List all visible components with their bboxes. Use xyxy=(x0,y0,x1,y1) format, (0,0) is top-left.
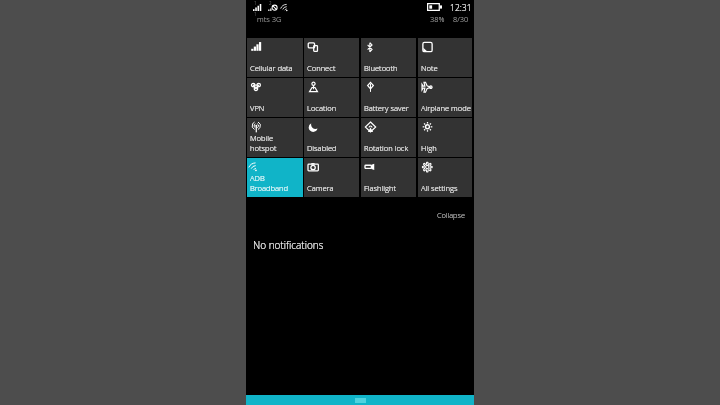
staticText: Disabled xyxy=(307,143,337,153)
staticText: Rotation lock xyxy=(364,143,409,153)
staticText: VPN xyxy=(250,103,265,113)
button[interactable]: Camera xyxy=(304,158,359,197)
button[interactable]: Location xyxy=(304,78,359,117)
button[interactable]: All settings xyxy=(418,158,472,197)
button[interactable]: Bluetooth xyxy=(361,38,416,77)
button[interactable]: VPN xyxy=(247,78,303,117)
button[interactable]: Flashlight xyxy=(361,158,416,197)
staticText: All settings xyxy=(421,183,458,193)
staticText: Broadband xyxy=(250,183,289,193)
staticText: Mobile xyxy=(250,133,274,143)
staticText: High xyxy=(421,143,437,153)
staticText: Bluetooth xyxy=(364,63,398,73)
staticText: Flashlight xyxy=(364,183,396,193)
staticText: 2 xyxy=(269,0,272,6)
staticText: Location xyxy=(307,103,337,113)
staticText: Cellular data xyxy=(250,63,293,73)
staticText: Connect xyxy=(307,63,336,73)
staticText: Battery saver xyxy=(364,103,409,113)
button[interactable]: ADB xyxy=(247,158,303,197)
staticText: Camera xyxy=(307,183,334,193)
staticText: mts 3G xyxy=(257,14,282,24)
button[interactable]: Battery saver xyxy=(361,78,416,117)
staticText: 12:31 xyxy=(450,2,472,14)
staticText: hotspot xyxy=(250,143,277,153)
staticText: 8/30 xyxy=(453,14,469,24)
button[interactable]: Disabled xyxy=(304,118,359,157)
button[interactable]: Rotation lock xyxy=(361,118,416,157)
staticText: 1 xyxy=(254,0,257,6)
staticText: No notifications xyxy=(253,238,324,252)
staticText: 38% xyxy=(430,14,445,24)
button[interactable]: Note xyxy=(418,38,472,77)
button[interactable]: Airplane mode xyxy=(418,78,472,117)
button[interactable]: Mobile xyxy=(247,118,303,157)
staticText: Note xyxy=(421,63,438,73)
button[interactable]: Connect xyxy=(304,38,359,77)
button[interactable]: Navigation bar xyxy=(246,395,474,405)
button[interactable]: High xyxy=(418,118,472,157)
button[interactable]: Cellular data xyxy=(247,38,303,77)
staticText: Airplane mode xyxy=(421,103,471,113)
staticText: 1 xyxy=(254,11,257,17)
staticText: ADB xyxy=(250,173,265,183)
button[interactable]: Collapse xyxy=(246,210,474,220)
